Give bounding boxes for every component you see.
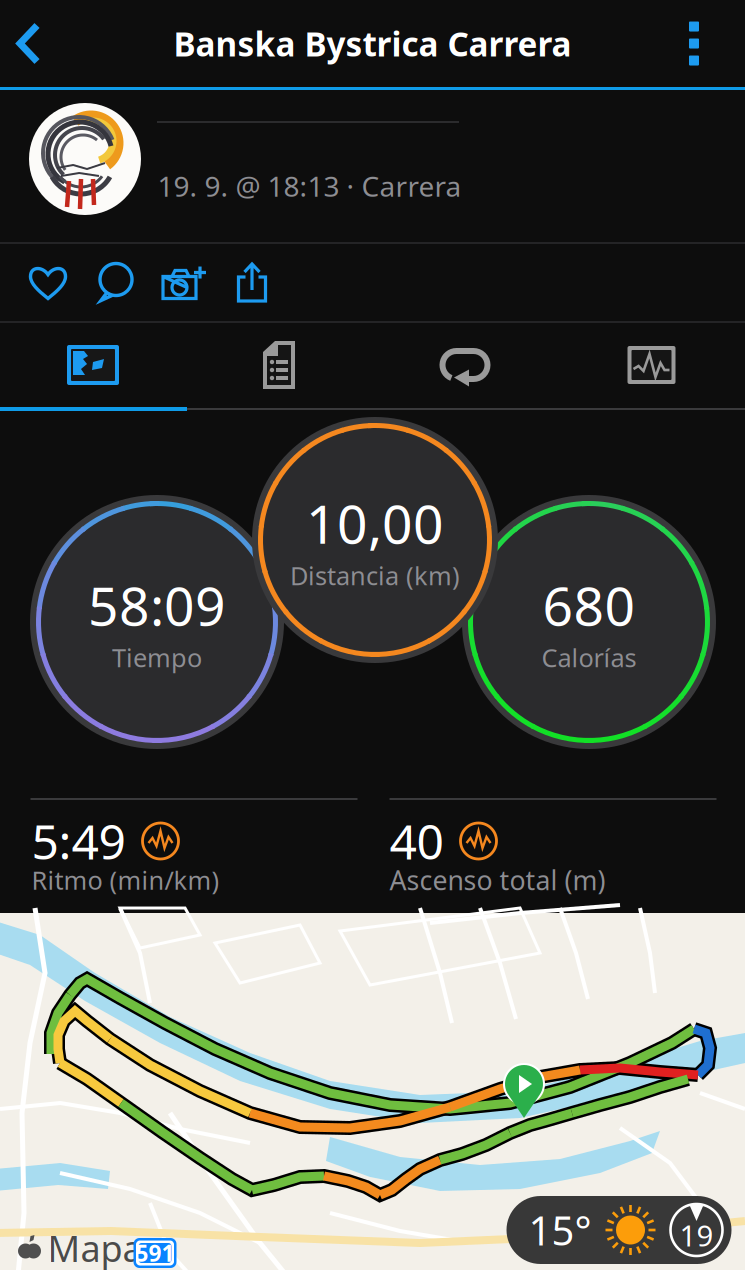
staticText: Ritmo (min/km) (31, 863, 219, 897)
staticText: Tiempo (112, 641, 202, 674)
staticText: Mapas (47, 1224, 159, 1270)
staticText: Banska Bystrica Carrera (173, 21, 571, 66)
staticText: 680 (542, 570, 635, 641)
staticText: 10,00 (306, 488, 444, 559)
button[interactable]: Laps (372, 323, 558, 407)
button[interactable]: Comment (82, 244, 150, 321)
button[interactable]: More options (643, 0, 745, 87)
button[interactable]: Map (0, 323, 186, 407)
staticText: Calorías (541, 641, 636, 674)
staticText: 19 (679, 1215, 713, 1254)
button[interactable]: Share (218, 244, 286, 321)
staticText: 5:49 (31, 809, 125, 873)
staticText: 58:09 (88, 570, 226, 641)
button[interactable]: Back (0, 0, 58, 87)
staticText: 591 (135, 1238, 174, 1268)
staticText: 40 (389, 809, 443, 873)
staticText: 19. 9. @ 18:13 · Carrera (157, 167, 461, 205)
staticText: 15° (528, 1203, 591, 1256)
button[interactable]: Add photo (150, 244, 218, 321)
button[interactable]: Like (14, 244, 82, 321)
button[interactable]: Details (186, 323, 372, 407)
staticText: Distancia (km) (290, 559, 460, 592)
staticText: Ascenso total (m) (389, 862, 605, 898)
button[interactable]: Charts (558, 323, 745, 407)
